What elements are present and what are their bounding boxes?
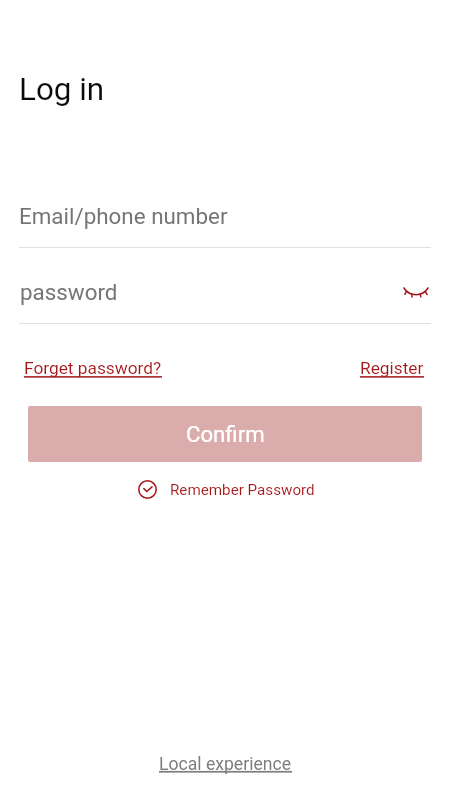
staticText: Log in xyxy=(19,71,105,108)
staticText: Forget password? xyxy=(24,358,162,378)
button[interactable]: Remember Password xyxy=(138,480,315,499)
button[interactable]: Forget password? xyxy=(24,358,162,378)
button[interactable]: Local experience xyxy=(159,754,292,775)
staticText: password xyxy=(20,279,118,305)
staticText: Remember Password xyxy=(170,481,315,499)
staticText: Local experience xyxy=(159,754,292,775)
button[interactable]: Show password xyxy=(397,273,435,313)
button[interactable]: password xyxy=(19,272,431,323)
staticText: Confirm xyxy=(186,421,265,447)
button[interactable]: Confirm xyxy=(28,406,422,462)
button[interactable]: Register xyxy=(360,358,424,378)
staticText: Register xyxy=(360,358,424,378)
staticText: Email/phone number xyxy=(19,203,228,229)
button[interactable]: Email/phone number xyxy=(19,196,431,247)
